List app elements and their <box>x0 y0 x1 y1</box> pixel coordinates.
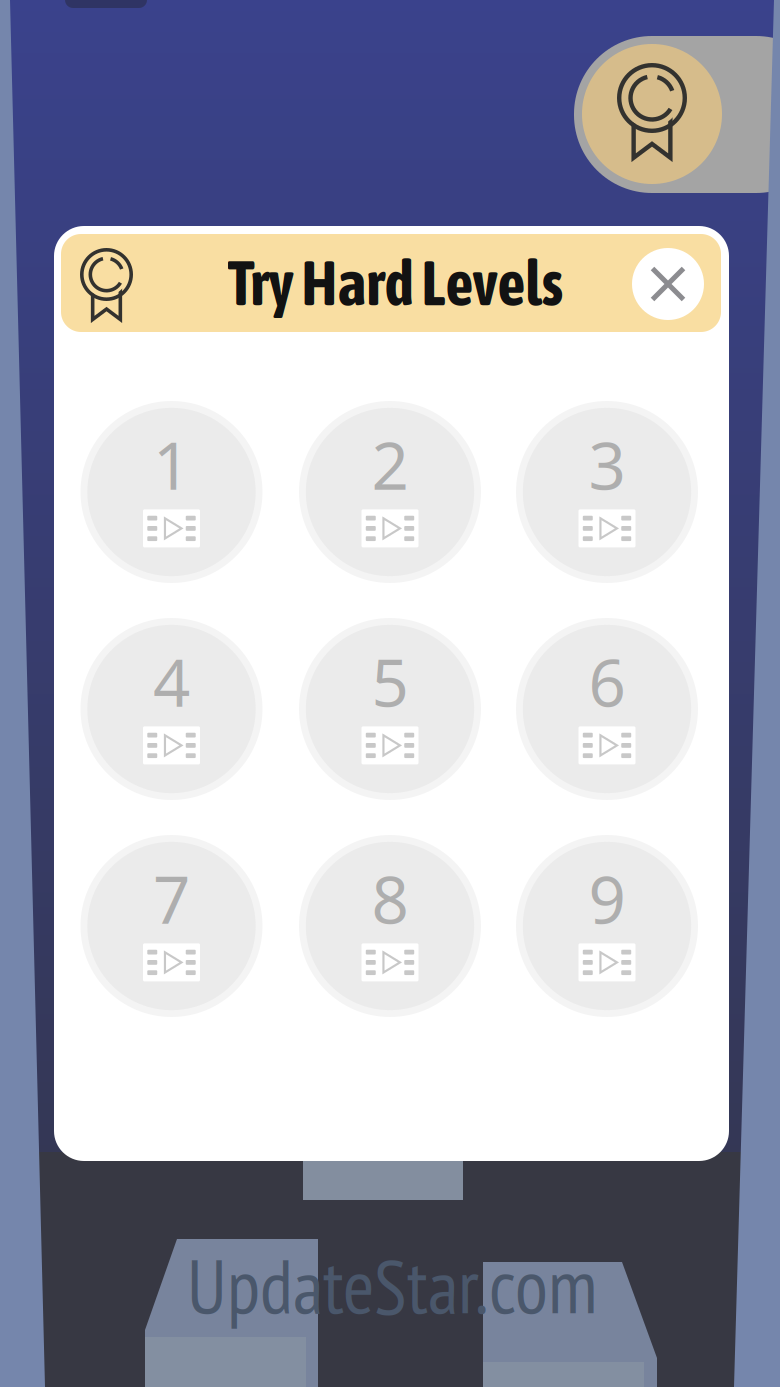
staticText: 9 <box>588 855 625 942</box>
button[interactable]: 8 <box>299 835 481 1017</box>
staticText: 4 <box>153 638 190 725</box>
staticText: 2 <box>371 421 408 508</box>
button[interactable]: 2 <box>299 401 481 583</box>
staticText: 5 <box>371 638 408 725</box>
button[interactable]: 5 <box>299 618 481 800</box>
button[interactable]: 4 <box>80 618 262 800</box>
button[interactable]: 1 <box>80 401 262 583</box>
button[interactable]: 7 <box>80 835 262 1017</box>
staticText: 7 <box>153 855 190 942</box>
staticText: 3 <box>588 421 625 508</box>
button[interactable]: 6 <box>516 618 698 800</box>
staticText: 1 <box>153 421 190 508</box>
button[interactable]: Close <box>632 248 704 320</box>
staticText: Try Hard Levels <box>227 248 563 318</box>
staticText: 8 <box>371 855 408 942</box>
button[interactable]: 9 <box>516 835 698 1017</box>
button[interactable]: 3 <box>516 401 698 583</box>
staticText: UpdateStar.com <box>187 1236 597 1334</box>
staticText: 6 <box>588 638 625 725</box>
button[interactable]: Achievements <box>574 36 780 193</box>
